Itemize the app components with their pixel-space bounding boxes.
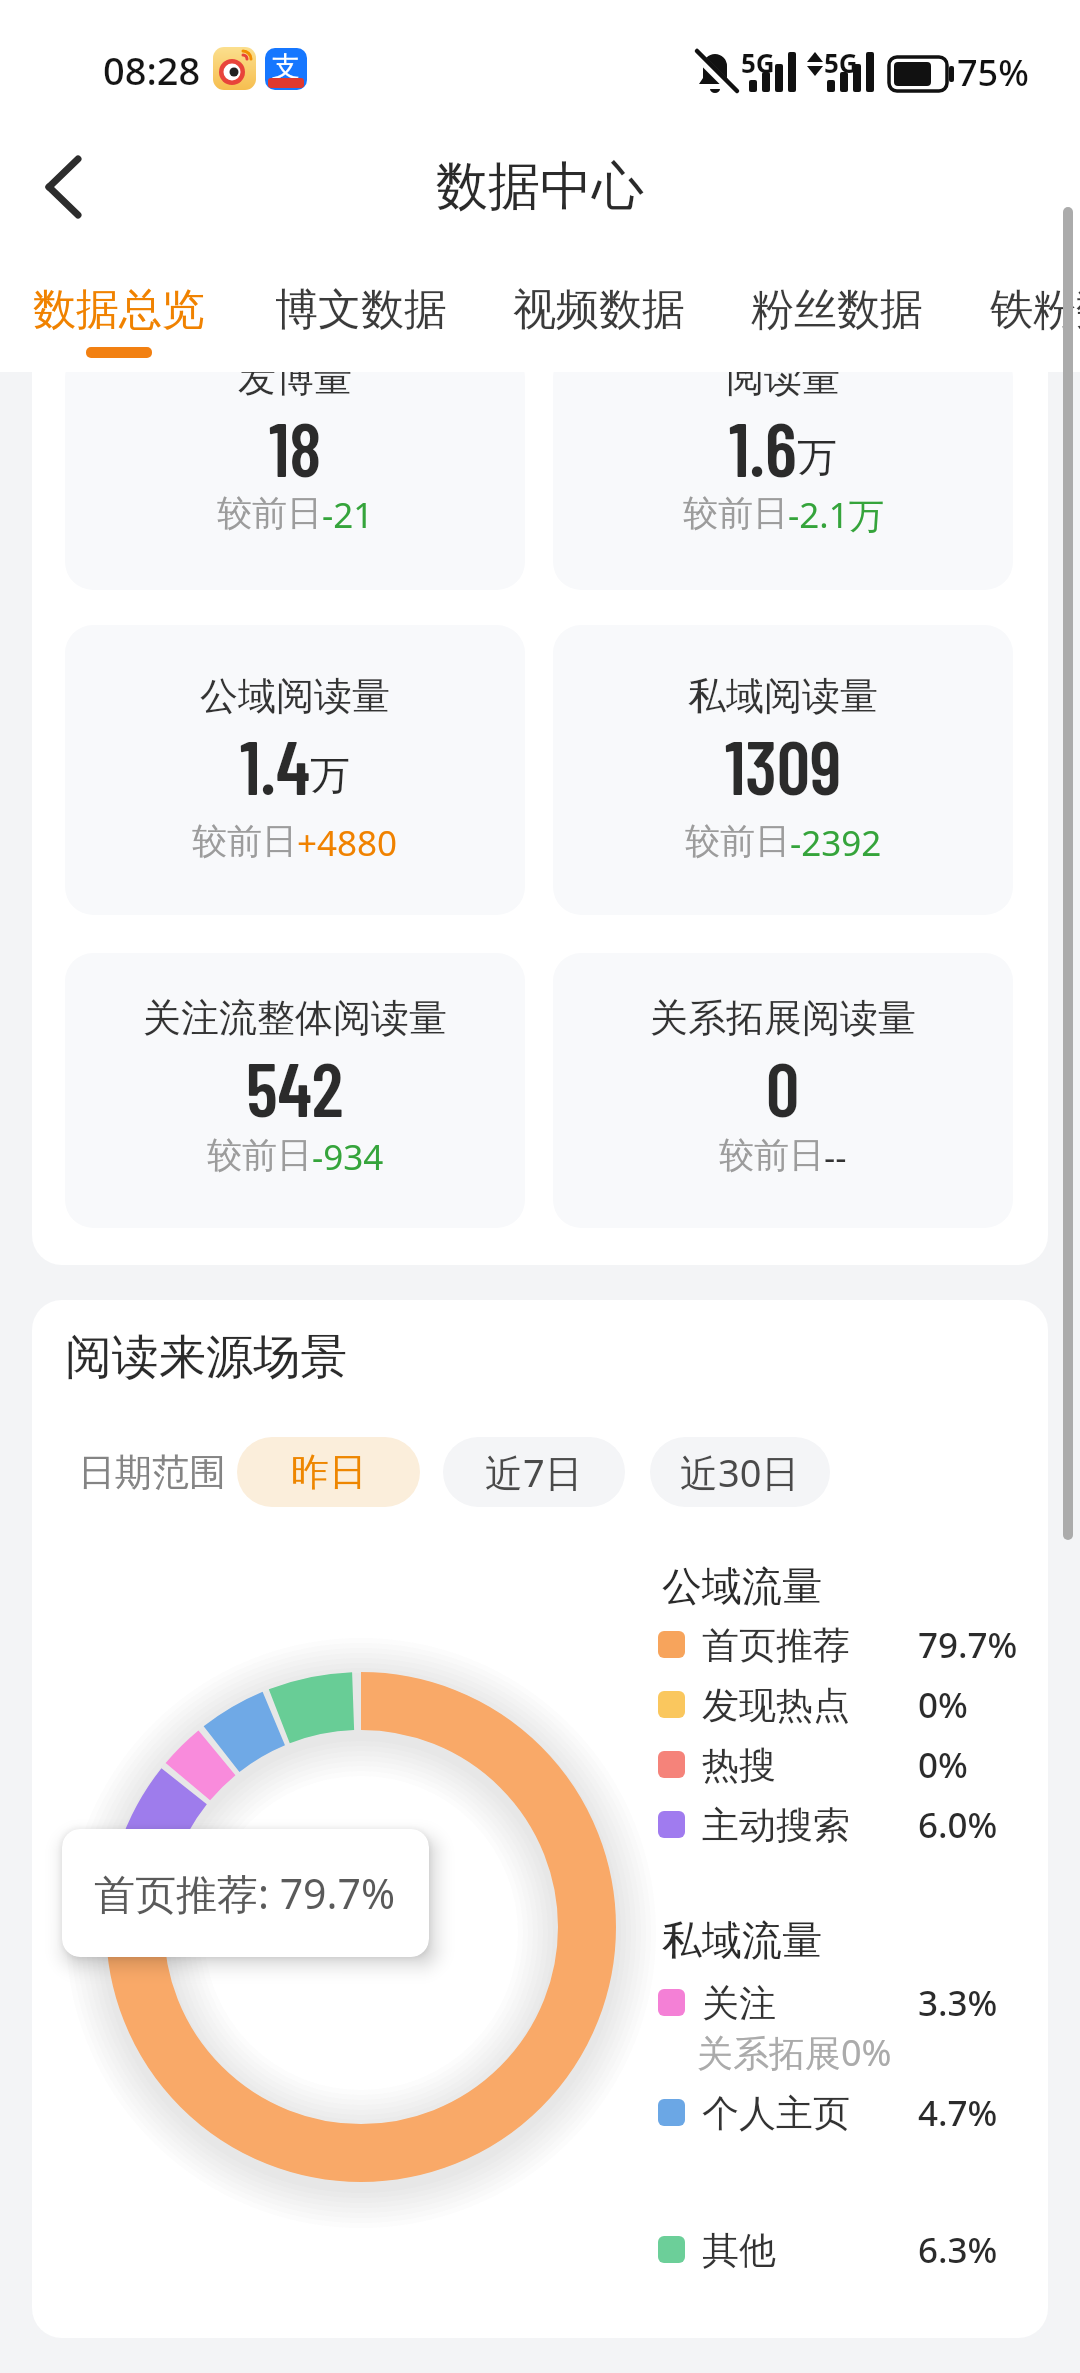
- staticText: 1.4: [240, 721, 310, 810]
- staticText: 6.0%: [918, 1801, 998, 1849]
- staticText: 较前日: [683, 491, 788, 535]
- staticText: 近30日: [680, 1446, 800, 1498]
- staticText: -2392: [790, 819, 882, 867]
- staticText: 较前日: [192, 819, 297, 863]
- staticText: 博文数据: [275, 283, 447, 337]
- staticText: 0%: [918, 1681, 968, 1729]
- staticText: 个人主页: [702, 2090, 850, 2137]
- staticText: 542: [246, 1043, 344, 1132]
- staticText: 18: [269, 403, 322, 492]
- staticText: 数据总览: [33, 283, 205, 337]
- staticText: 79.7%: [918, 1621, 1018, 1669]
- button[interactable]: 铁粉数据: [990, 278, 1080, 342]
- staticText: 较前日: [217, 491, 322, 535]
- staticText: -934: [312, 1133, 384, 1181]
- staticText: 主动搜索: [702, 1802, 850, 1849]
- staticText: 6.3%: [918, 2226, 998, 2274]
- staticText: 关注: [702, 1980, 776, 2027]
- staticText: 其他: [702, 2227, 776, 2274]
- staticText: 关注流整体阅读量: [143, 994, 447, 1042]
- staticText: 4.7%: [918, 2089, 998, 2137]
- staticText: 粉丝数据: [751, 283, 923, 337]
- staticText: 5G: [741, 45, 775, 80]
- button[interactable]: 博文数据: [275, 278, 447, 342]
- button[interactable]: 近7日: [443, 1437, 625, 1507]
- staticText: 75%: [957, 48, 1029, 97]
- staticText: 热搜: [702, 1742, 776, 1789]
- staticText: 0%: [918, 1741, 968, 1789]
- staticText: 私域阅读量: [688, 672, 878, 720]
- staticText: 近7日: [485, 1446, 583, 1498]
- staticText: --: [824, 1133, 847, 1181]
- staticText: 0: [766, 1043, 800, 1132]
- button[interactable]: 视频数据: [513, 278, 685, 342]
- staticText: 较前日: [207, 1133, 312, 1177]
- staticText: 公域流量: [662, 1561, 822, 1611]
- staticText: 3.3%: [918, 1979, 998, 2027]
- button[interactable]: [30, 155, 100, 225]
- staticText: 首页推荐: [702, 1622, 850, 1669]
- staticText: 1309: [725, 721, 842, 810]
- staticText: 较前日: [719, 1133, 824, 1177]
- staticText: 铁粉数据: [990, 283, 1080, 337]
- staticText: 1.6: [729, 403, 797, 492]
- staticText: 日期范围: [78, 1449, 226, 1496]
- staticText: 发现热点: [702, 1682, 850, 1729]
- staticText: 发博量: [238, 354, 352, 402]
- staticText: 较前日: [685, 819, 790, 863]
- staticText: 昨日: [291, 1448, 367, 1496]
- staticText: 视频数据: [513, 283, 685, 337]
- staticText: 数据中心: [436, 154, 644, 220]
- staticText: -2.1万: [788, 491, 884, 539]
- staticText: 私域流量: [662, 1915, 822, 1965]
- button[interactable]: 昨日: [237, 1437, 420, 1507]
- staticText: 万: [797, 432, 837, 482]
- staticText: 支: [272, 49, 300, 84]
- button[interactable]: 近30日: [650, 1437, 830, 1507]
- staticText: 阅读来源场景: [65, 1328, 347, 1387]
- staticText: +4880: [297, 819, 398, 867]
- staticText: 关系拓展0%: [697, 2028, 892, 2077]
- staticText: 关系拓展阅读量: [650, 994, 916, 1042]
- staticText: 公域阅读量: [200, 672, 390, 720]
- button[interactable]: 数据总览: [33, 278, 205, 342]
- staticText: 万: [310, 750, 350, 800]
- staticText: -21: [322, 491, 374, 539]
- staticText: 首页推荐: 79.7%: [94, 1865, 396, 1921]
- button[interactable]: 粉丝数据: [751, 278, 923, 342]
- staticText: 08:28: [103, 44, 201, 96]
- staticText: 阅读量: [726, 354, 840, 402]
- staticText: 5G: [824, 45, 858, 80]
